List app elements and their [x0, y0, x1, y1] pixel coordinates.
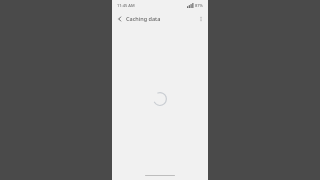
staticText: Caching data — [126, 15, 194, 22]
button[interactable]: Navigate up — [113, 12, 126, 25]
staticText: 87% — [195, 3, 203, 8]
button[interactable]: More options — [194, 12, 207, 25]
staticText: 11:45 AM — [117, 3, 135, 8]
